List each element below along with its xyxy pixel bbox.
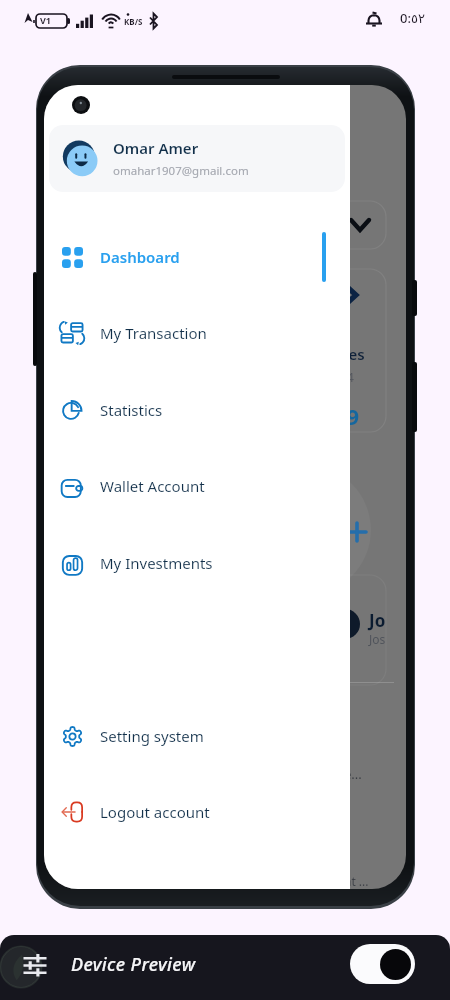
button[interactable]: Dashboard — [44, 232, 350, 282]
staticText: 0:٥٢ — [400, 9, 425, 27]
staticText: 24 — [339, 368, 354, 386]
staticText: ces — [341, 344, 365, 364]
staticText: My Transaction — [100, 323, 207, 343]
staticText: Omar Amer — [113, 138, 199, 158]
button[interactable]: My Transaction — [44, 308, 350, 358]
staticText: V1 — [40, 14, 51, 26]
button[interactable]: Setting system — [44, 711, 350, 761]
staticText: e... — [344, 765, 362, 783]
button[interactable]: Statistics — [44, 385, 350, 435]
staticText: Device Preview — [71, 952, 196, 977]
staticText: Logout account — [100, 802, 210, 822]
staticText: nt ... — [344, 873, 369, 889]
button[interactable]: Omar Amer — [49, 125, 345, 192]
staticText: Jo — [369, 609, 386, 632]
staticText: KB/S — [124, 16, 143, 27]
staticText: Setting system — [100, 726, 204, 746]
button[interactable]: My Investments — [44, 538, 350, 588]
staticText: omahar1907@gmail.com — [113, 163, 249, 179]
button[interactable]: Preview settings — [23, 953, 47, 977]
staticText: My Investments — [100, 553, 213, 573]
staticText: Statistics — [100, 400, 163, 420]
staticText: Dashboard — [100, 247, 180, 267]
staticText: 29 — [334, 401, 360, 431]
button[interactable]: Logout account — [44, 787, 350, 837]
staticText: Wallet Account — [100, 476, 205, 496]
staticText: Jos — [369, 631, 386, 647]
button[interactable]: Toggle device preview — [350, 944, 415, 984]
button[interactable]: Wallet Account — [44, 461, 350, 511]
